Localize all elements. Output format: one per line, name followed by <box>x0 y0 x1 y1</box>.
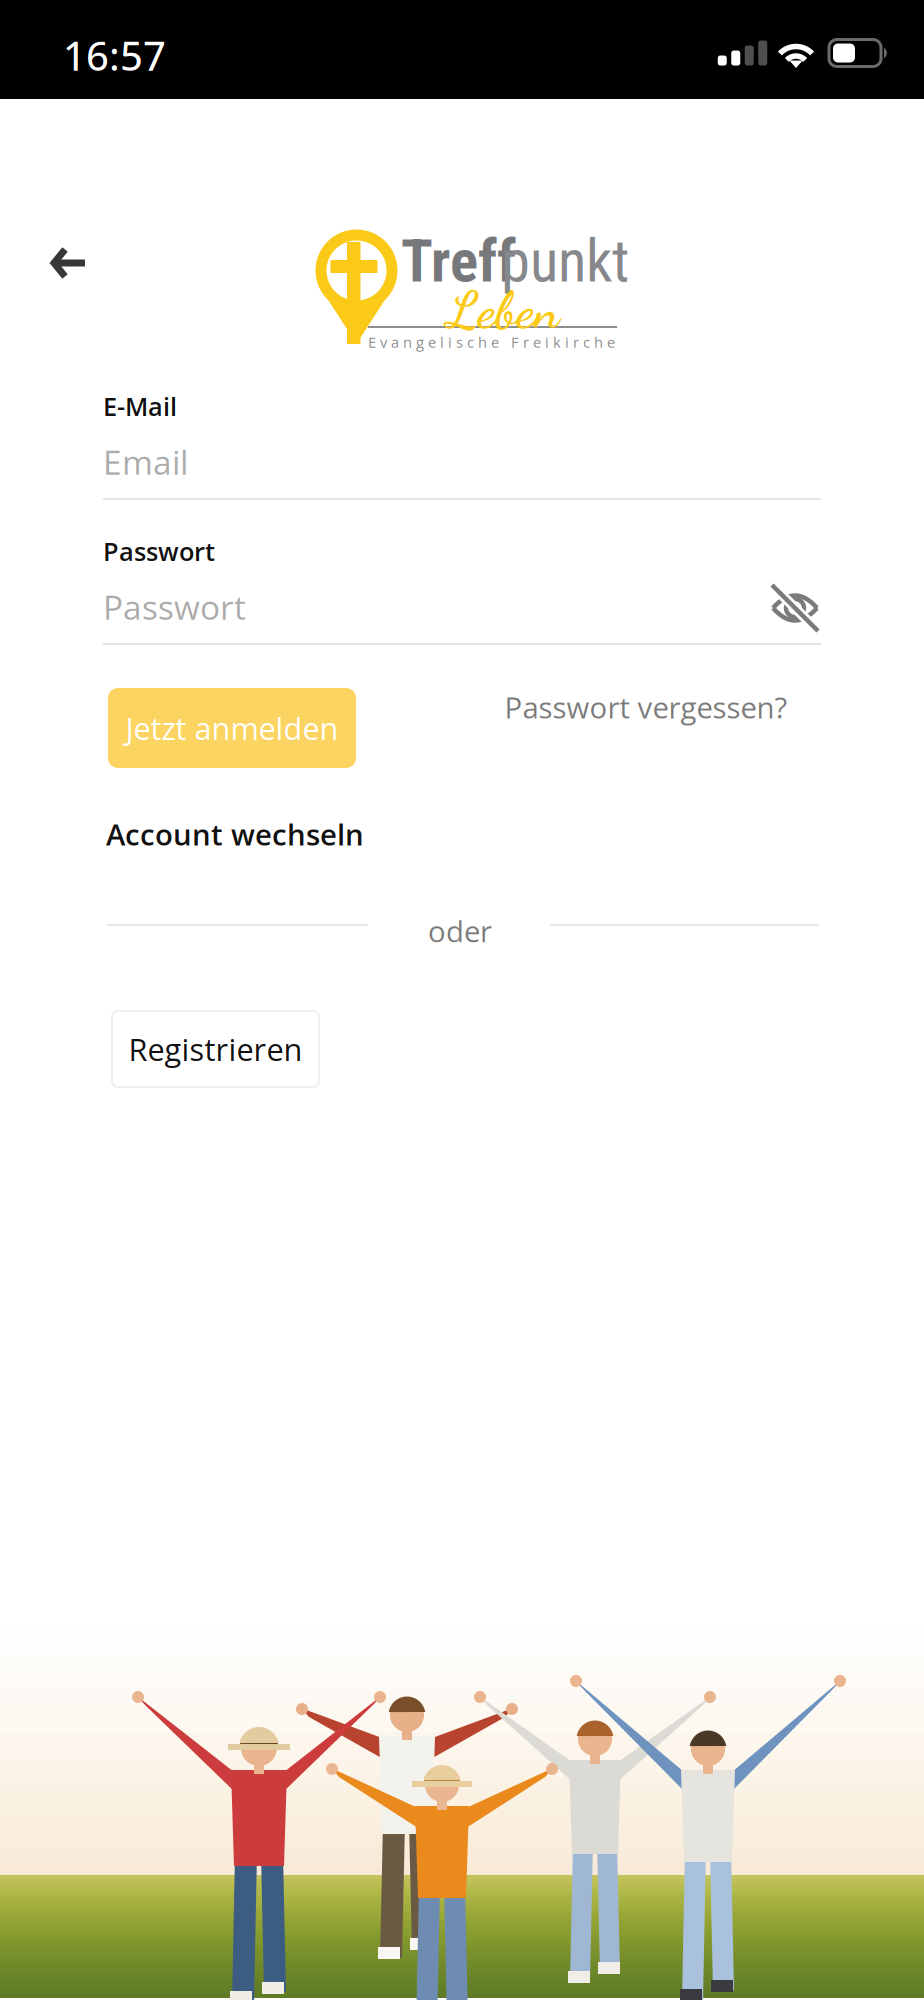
staticText: E-Mail <box>103 389 177 423</box>
button[interactable]: Account wechseln <box>106 808 366 860</box>
button[interactable]: Back <box>27 221 111 305</box>
button[interactable]: Passwort vergessen? <box>496 677 796 737</box>
staticText: Passwort vergessen? <box>504 687 787 727</box>
staticText: punkt <box>501 227 629 296</box>
staticText: Email <box>103 439 188 484</box>
staticText: Account wechseln <box>106 814 364 854</box>
staticText: Leben <box>447 279 560 341</box>
staticText: oder <box>428 911 492 951</box>
staticText: E v a n g e l i s c h e F r e i k i r c … <box>368 332 615 352</box>
staticText: 16:57 <box>63 28 166 82</box>
staticText: Treff <box>401 227 516 296</box>
button[interactable]: Registrieren <box>112 1011 319 1087</box>
button[interactable]: Show password <box>769 582 821 634</box>
staticText: Passwort <box>103 534 215 568</box>
button[interactable]: Jetzt anmelden <box>108 688 356 768</box>
staticText: Registrieren <box>128 1028 302 1070</box>
staticText: Jetzt anmelden <box>125 707 338 749</box>
staticText: Passwort <box>103 584 246 629</box>
